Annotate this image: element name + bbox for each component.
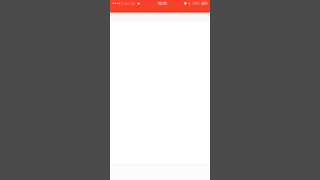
staticText: 00:00 [158, 1, 167, 6]
staticText: 98% [193, 1, 200, 6]
staticText: Carrier [121, 1, 135, 6]
